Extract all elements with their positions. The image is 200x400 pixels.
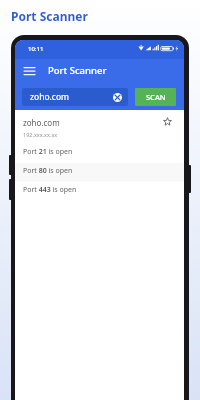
button[interactable]: zoho.com: [15, 110, 184, 144]
button[interactable]: Clear text: [113, 93, 122, 102]
staticText: 192.xxx.xx.xx: [23, 131, 58, 138]
staticText: Port 443 is open: [23, 185, 77, 195]
button[interactable]: Port 443 is open: [15, 182, 184, 201]
staticText: Port Scanner: [48, 64, 107, 77]
staticText: SCAN: [146, 92, 166, 102]
staticText: Port 80 is open: [23, 166, 73, 176]
button[interactable]: Open navigation menu: [20, 61, 38, 79]
staticText: Port Scanner: [11, 8, 88, 24]
staticText: 10:11: [28, 45, 44, 53]
button[interactable]: Port 21 is open: [15, 144, 184, 163]
staticText: Port 21 is open: [23, 147, 73, 157]
button[interactable]: zoho.com: [22, 88, 128, 106]
staticText: zoho.com: [30, 91, 113, 103]
button[interactable]: Port 80 is open: [15, 163, 184, 182]
staticText: zoho.com: [23, 117, 60, 128]
button[interactable]: SCAN: [135, 88, 176, 106]
button[interactable]: Add to favorites: [161, 115, 173, 127]
